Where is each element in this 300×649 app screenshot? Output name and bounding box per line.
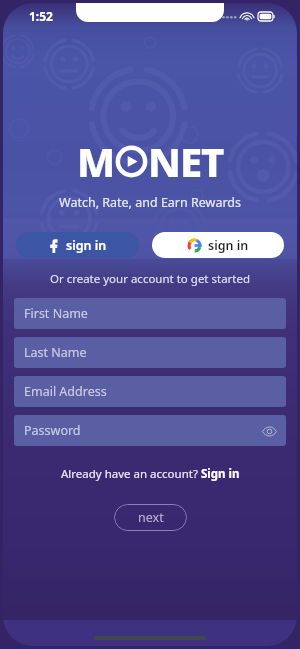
staticText: next	[138, 509, 164, 526]
staticText: Last Name	[24, 344, 87, 361]
staticText: sign in	[66, 237, 107, 254]
button[interactable]: Last Name	[14, 337, 286, 368]
staticText: Password	[24, 422, 81, 439]
staticText: Watch, Rate, and Earn Rewards	[3, 194, 297, 211]
staticText: Already have an account?	[61, 466, 201, 482]
button[interactable]: sign in	[16, 232, 139, 258]
staticText: M	[77, 134, 115, 188]
button[interactable]: First Name	[14, 298, 286, 329]
staticText: NET	[148, 134, 224, 188]
staticText: Email Address	[24, 383, 107, 400]
button[interactable]: Show password	[261, 423, 277, 439]
button[interactable]: Already have an account?	[3, 466, 297, 482]
staticText: 1:52	[29, 8, 53, 24]
button[interactable]: Email Address	[14, 376, 286, 407]
button[interactable]: sign in	[152, 232, 284, 258]
button[interactable]: Password	[14, 415, 286, 446]
button[interactable]: next	[114, 504, 187, 531]
staticText: First Name	[24, 305, 88, 322]
staticText: Sign in	[201, 466, 240, 482]
staticText: sign in	[208, 237, 249, 254]
staticText: Or create your account to get started	[3, 271, 297, 287]
